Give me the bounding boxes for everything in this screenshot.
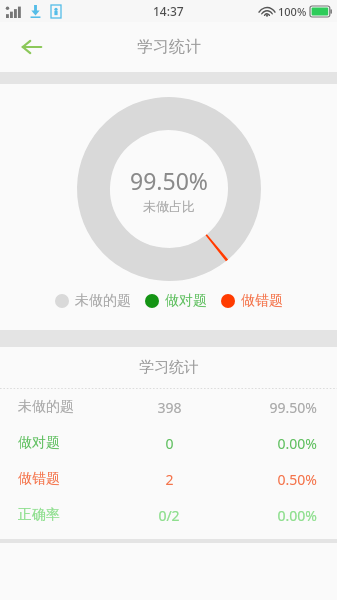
staticText: 做错题 <box>241 292 283 310</box>
staticText: 学习统计 <box>139 358 199 377</box>
button[interactable]: 做对题 <box>0 425 337 461</box>
staticText: 0.00% <box>277 434 317 453</box>
staticText: 正确率 <box>18 506 60 524</box>
staticText: 未做占比 <box>143 198 195 214</box>
staticText: 2 <box>165 470 174 489</box>
button[interactable]: 正确率 <box>0 497 337 533</box>
staticText: 学习统计 <box>137 37 201 57</box>
staticText: 做错题 <box>18 470 60 488</box>
staticText: 14:37 <box>153 3 184 19</box>
button[interactable]: 未做的题 <box>0 389 337 425</box>
staticText: 做对题 <box>18 434 60 452</box>
staticText: 未做的题 <box>75 292 131 310</box>
staticText: 未做的题 <box>18 398 74 416</box>
staticText: 0.50% <box>277 470 317 489</box>
staticText: 99.50% <box>269 398 317 417</box>
staticText: 0/2 <box>158 506 180 525</box>
staticText: 0.00% <box>277 506 317 525</box>
button[interactable]: 做错题 <box>221 292 283 310</box>
staticText: 398 <box>157 398 182 417</box>
button[interactable]: Back <box>8 23 56 71</box>
button[interactable]: 做对题 <box>145 292 207 310</box>
staticText: 99.50% <box>130 165 208 196</box>
staticText: 做对题 <box>165 292 207 310</box>
button[interactable]: 做错题 <box>0 461 337 497</box>
staticText: 0 <box>165 434 174 453</box>
staticText: 100% <box>278 4 307 19</box>
button[interactable]: 未做的题 <box>55 292 131 310</box>
